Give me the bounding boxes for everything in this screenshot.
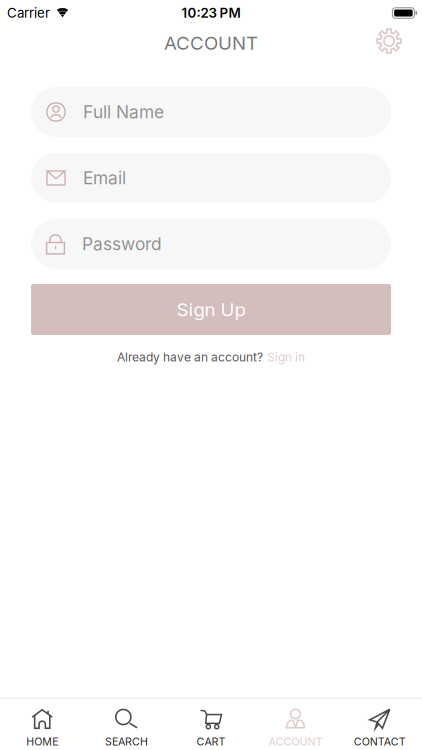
staticText: SEARCH xyxy=(105,735,148,748)
staticText: Email xyxy=(83,168,126,188)
staticText: 10:23 PM xyxy=(181,5,240,21)
button[interactable]: CART xyxy=(169,699,253,749)
button[interactable]: Email xyxy=(31,153,391,203)
button[interactable]: HOME xyxy=(0,699,84,749)
staticText: HOME xyxy=(26,735,58,748)
button[interactable]: Full Name xyxy=(31,87,391,137)
button[interactable]: Sign in xyxy=(267,350,305,364)
staticText: ACCOUNT xyxy=(268,735,322,748)
staticText: Password xyxy=(82,234,162,254)
staticText: Full Name xyxy=(83,102,164,122)
staticText: Sign Up xyxy=(176,298,245,320)
button[interactable]: CONTACT xyxy=(338,699,422,749)
button[interactable]: Settings xyxy=(376,28,402,54)
staticText: Carrier xyxy=(7,5,50,21)
staticText: Sign in xyxy=(267,350,305,364)
button[interactable]: Sign Up xyxy=(31,284,391,335)
button[interactable]: Password xyxy=(31,219,391,269)
staticText: ACCOUNT xyxy=(164,32,258,54)
staticText: CART xyxy=(196,735,225,748)
button[interactable]: ACCOUNT xyxy=(253,699,338,749)
staticText: CONTACT xyxy=(354,735,406,748)
button[interactable]: SEARCH xyxy=(84,699,169,749)
staticText: Already have an account? xyxy=(117,350,263,364)
